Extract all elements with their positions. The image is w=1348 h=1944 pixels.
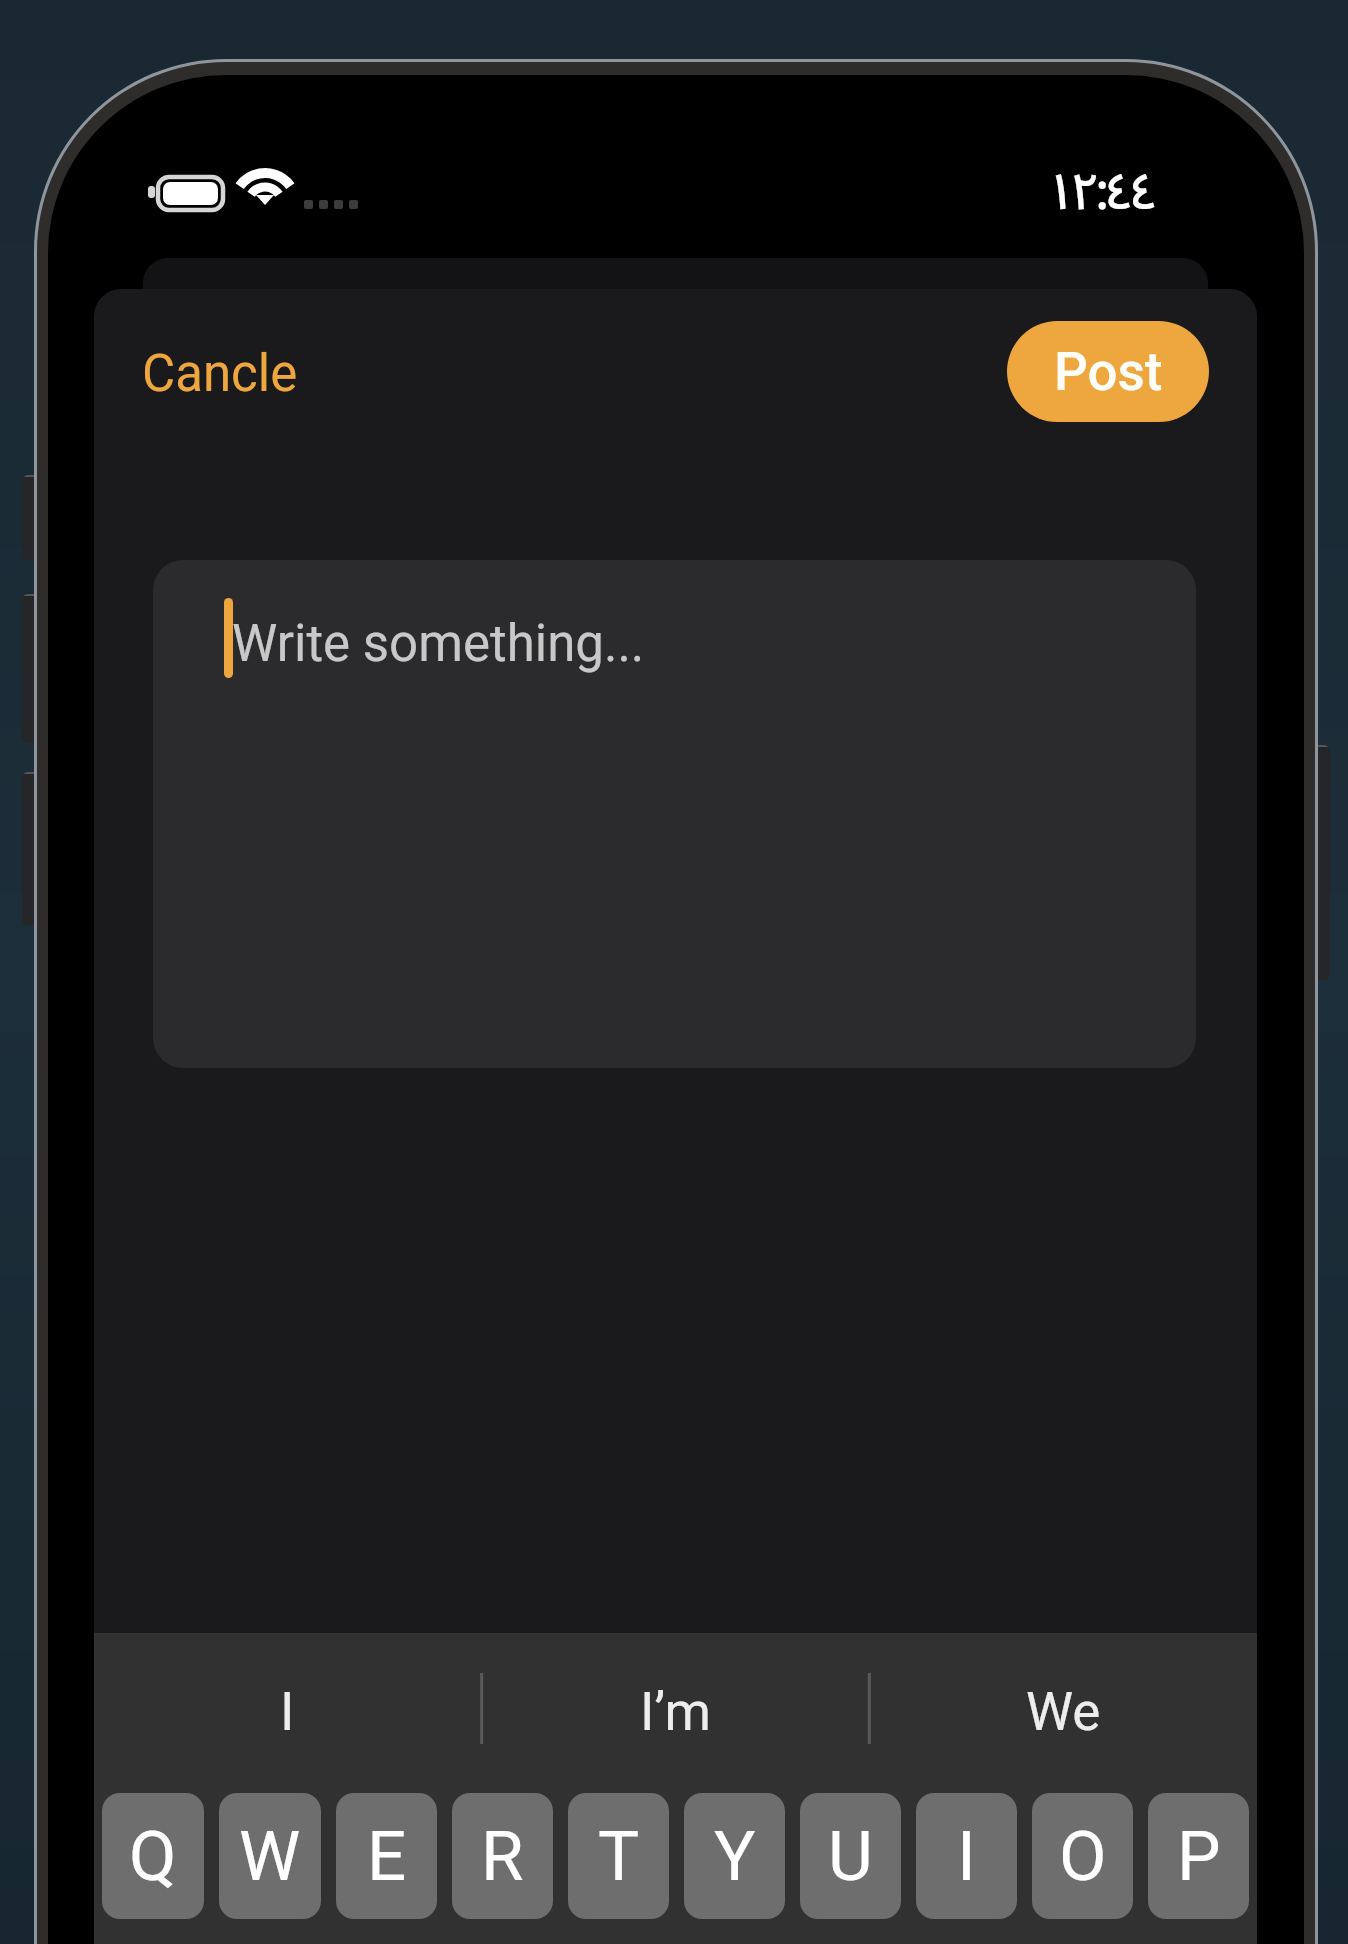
button[interactable]: We bbox=[869, 1633, 1257, 1790]
staticText: O bbox=[1059, 1816, 1107, 1897]
staticText: We bbox=[1026, 1681, 1101, 1743]
button[interactable]: E bbox=[336, 1793, 437, 1919]
button[interactable]: P bbox=[1148, 1793, 1249, 1919]
staticText: U bbox=[828, 1816, 873, 1897]
staticText: R bbox=[481, 1816, 524, 1897]
staticText: ١٢:٤٤ bbox=[1046, 139, 1154, 247]
button[interactable]: O bbox=[1032, 1793, 1133, 1919]
other: Battery bbox=[148, 169, 228, 217]
staticText: Write something... bbox=[232, 614, 645, 674]
button[interactable]: Cancle bbox=[124, 330, 316, 418]
button[interactable]: Post bbox=[1007, 321, 1209, 422]
staticText: I bbox=[957, 1816, 976, 1897]
button[interactable]: R bbox=[452, 1793, 553, 1919]
staticText: E bbox=[367, 1816, 407, 1897]
button[interactable]: T bbox=[568, 1793, 669, 1919]
staticText: I bbox=[280, 1681, 295, 1743]
staticText: P bbox=[1177, 1816, 1221, 1897]
button[interactable]: Q bbox=[102, 1793, 204, 1919]
staticText: Cancle bbox=[142, 344, 298, 404]
button[interactable]: U bbox=[800, 1793, 901, 1919]
button[interactable]: Write something... bbox=[153, 560, 1196, 1068]
other: Wi-Fi bbox=[241, 168, 293, 208]
staticText: W bbox=[239, 1816, 301, 1897]
staticText: Post bbox=[1054, 341, 1163, 403]
button[interactable]: Y bbox=[684, 1793, 785, 1919]
staticText: T bbox=[598, 1816, 640, 1897]
staticText: I’m bbox=[640, 1681, 711, 1743]
staticText: Y bbox=[714, 1816, 756, 1897]
button[interactable]: W bbox=[219, 1793, 321, 1919]
button[interactable]: I’m bbox=[481, 1633, 869, 1790]
button[interactable]: I bbox=[94, 1633, 481, 1790]
staticText: Q bbox=[129, 1816, 177, 1897]
button[interactable]: I bbox=[916, 1793, 1017, 1919]
